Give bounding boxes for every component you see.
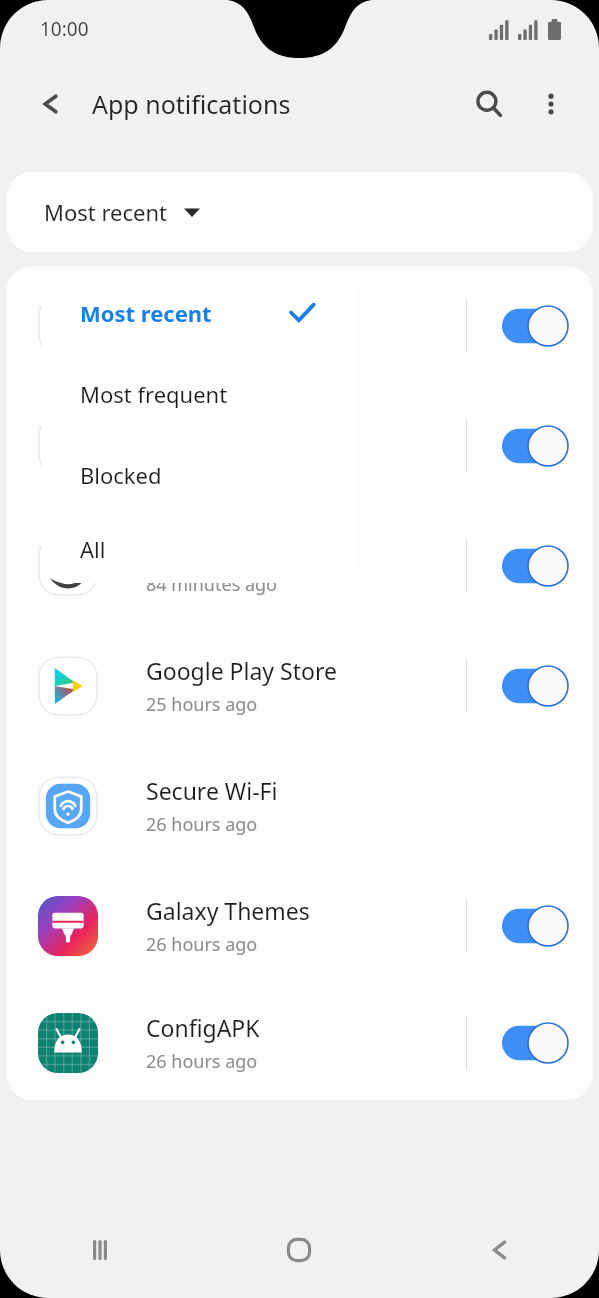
staticText: 25 hours ago [146, 692, 258, 717]
button[interactable]: Search [465, 80, 513, 128]
staticText: Most recent [44, 197, 168, 227]
staticText: Galaxy Themes [146, 895, 310, 926]
staticText: Secure Wi-Fi [146, 775, 278, 806]
button[interactable]: Messages [6, 266, 593, 386]
button[interactable]: Back [399, 1202, 599, 1298]
staticText: Messages [146, 295, 253, 326]
button[interactable]: Toggle notifications for Google Play Sto… [499, 658, 571, 714]
staticText: 40 minutes ago [146, 452, 278, 477]
button[interactable]: Blocked [42, 434, 357, 515]
button[interactable]: All [42, 515, 357, 583]
button[interactable]: Google Play Store [6, 626, 593, 746]
button[interactable]: More options [529, 82, 573, 126]
button[interactable]: ConfigAPK [6, 986, 593, 1100]
button[interactable]: Toggle notifications for Messages [499, 298, 571, 354]
button[interactable]: Calendar [6, 386, 593, 506]
staticText: Blocked [80, 460, 162, 490]
staticText: Most frequent [80, 379, 228, 409]
button[interactable]: Toggle notifications for Calendar [499, 418, 571, 474]
button[interactable]: Toggle notifications for ConfigAPK [499, 1015, 571, 1071]
button[interactable]: Clock [6, 506, 593, 626]
staticText: 26 hours ago [146, 812, 258, 837]
staticText: 26 hours ago [146, 1049, 258, 1074]
button[interactable]: Recents [0, 1202, 199, 1298]
button[interactable]: Most frequent [42, 353, 357, 434]
staticText: App notifications [92, 87, 291, 121]
staticText: ConfigAPK [146, 1012, 260, 1043]
button[interactable]: Secure Wi-Fi [6, 746, 593, 866]
staticText: Most recent [80, 298, 212, 328]
button[interactable]: Home [199, 1202, 399, 1298]
staticText: 10:00 [40, 16, 89, 42]
button[interactable]: Galaxy Themes [6, 866, 593, 986]
staticText: 84 minutes ago [146, 572, 278, 597]
button[interactable]: Toggle notifications for Clock [499, 538, 571, 594]
staticText: All [80, 534, 106, 564]
button[interactable]: Toggle notifications for Galaxy Themes [499, 898, 571, 954]
button[interactable]: Most recent [6, 172, 593, 252]
staticText: 26 hours ago [146, 932, 258, 957]
staticText: Google Play Store [146, 655, 337, 686]
button[interactable]: Most recent [42, 272, 357, 353]
button[interactable]: Back [26, 80, 74, 128]
